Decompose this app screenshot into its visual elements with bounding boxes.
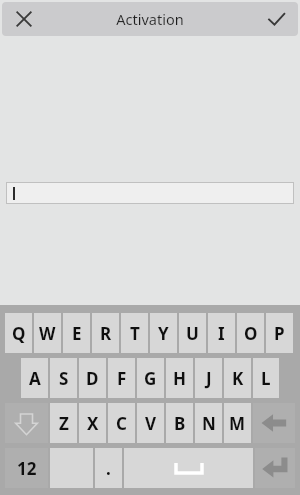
button[interactable]: Y	[150, 313, 177, 353]
staticText: W	[39, 322, 56, 345]
staticText: 12	[17, 457, 37, 480]
staticText: R	[100, 322, 112, 345]
button[interactable]: Confirm	[259, 2, 293, 36]
staticText: Q	[12, 322, 26, 345]
button[interactable]: X	[79, 403, 106, 443]
button[interactable]: E	[63, 313, 90, 353]
button[interactable]: F	[108, 358, 135, 398]
button[interactable]: B	[166, 403, 193, 443]
button[interactable]: O	[237, 313, 264, 353]
button[interactable]: J	[195, 358, 222, 398]
button[interactable]: C	[108, 403, 135, 443]
button[interactable]: Enter	[255, 448, 295, 488]
staticText: Activation	[116, 9, 184, 29]
button[interactable]: A	[21, 358, 48, 398]
staticText: I	[218, 322, 225, 345]
button[interactable]: T	[121, 313, 148, 353]
button[interactable]: W	[34, 313, 61, 353]
button[interactable]: M	[224, 403, 251, 443]
button[interactable]: H	[166, 358, 193, 398]
staticText: Z	[59, 412, 69, 435]
staticText: U	[186, 322, 199, 345]
button[interactable]: R	[92, 313, 119, 353]
button[interactable]: P	[266, 313, 293, 353]
button[interactable]: Shift	[5, 403, 48, 443]
staticText: G	[144, 367, 157, 390]
staticText: .	[106, 457, 111, 480]
staticText: B	[174, 412, 186, 435]
button[interactable]: Close	[7, 2, 41, 36]
staticText: L	[261, 367, 271, 390]
button[interactable]: N	[195, 403, 222, 443]
staticText: M	[229, 412, 246, 435]
button[interactable]: Space	[124, 448, 253, 488]
button[interactable]: D	[79, 358, 106, 398]
staticText: N	[202, 412, 216, 435]
staticText: E	[72, 322, 82, 345]
button[interactable]: G	[137, 358, 164, 398]
staticText: K	[232, 367, 244, 390]
staticText: T	[130, 322, 140, 345]
button[interactable]: S	[50, 358, 77, 398]
button[interactable]: L	[253, 358, 279, 398]
staticText: J	[206, 367, 212, 390]
button[interactable]: Z	[50, 403, 77, 443]
staticText: C	[116, 412, 127, 435]
staticText: O	[244, 322, 258, 345]
staticText: Y	[158, 322, 169, 345]
staticText: D	[86, 367, 99, 390]
staticText: S	[59, 367, 69, 390]
staticText: P	[274, 322, 285, 345]
staticText: V	[145, 412, 157, 435]
staticText: H	[173, 367, 187, 390]
button[interactable]: .	[95, 448, 122, 488]
button[interactable]: K	[224, 358, 251, 398]
button[interactable]	[6, 182, 294, 204]
staticText: A	[29, 367, 41, 390]
button[interactable]: 12	[5, 448, 48, 488]
staticText: X	[87, 412, 99, 435]
button[interactable]: Q	[5, 313, 32, 353]
button[interactable]: I	[208, 313, 235, 353]
button[interactable]: Backspace	[253, 403, 295, 443]
button[interactable]: U	[179, 313, 206, 353]
button[interactable]: V	[137, 403, 164, 443]
staticText: F	[117, 367, 127, 390]
